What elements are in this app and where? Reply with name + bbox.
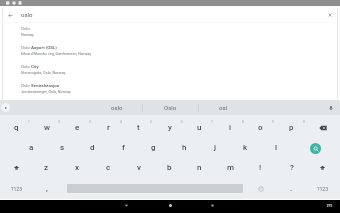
staticText: Norway — [21, 32, 34, 36]
button[interactable]: Backspace — [307, 119, 338, 136]
button[interactable]: . — [276, 180, 307, 197]
staticText: u — [197, 123, 202, 132]
staticText: Oslo Sentralstasjon — [21, 83, 60, 88]
button[interactable]: Oslo — [142, 100, 198, 115]
staticText: Edvard Munchs veg, Gardermoen, Norway — [21, 51, 92, 55]
staticText: d — [90, 143, 95, 152]
staticText: t — [137, 123, 140, 132]
button[interactable]: l — [261, 139, 292, 156]
staticText: y — [168, 123, 172, 132]
staticText: 8 — [242, 120, 244, 124]
button[interactable]: g — [138, 139, 169, 156]
button[interactable]: oslo — [89, 100, 145, 115]
staticText: j — [214, 143, 217, 152]
button[interactable]: Shift — [307, 159, 338, 176]
staticText: 4 — [120, 120, 122, 124]
staticText: . — [290, 184, 293, 193]
button[interactable]: w — [31, 119, 62, 136]
button[interactable]: Oslo — [2, 23, 337, 42]
staticText: oslo — [21, 11, 33, 18]
button[interactable]: q — [1, 119, 32, 136]
button[interactable]: a — [16, 139, 47, 156]
button[interactable]: r — [93, 119, 124, 136]
staticText: o — [258, 123, 263, 132]
staticText: 2 — [58, 120, 60, 124]
button[interactable]: k — [230, 139, 261, 156]
staticText: n — [197, 163, 202, 172]
button[interactable]: b — [154, 159, 185, 176]
staticText: 6 — [181, 120, 183, 124]
button[interactable]: , — [31, 180, 62, 197]
button[interactable]: ! — [245, 159, 276, 176]
button[interactable]: t — [123, 119, 154, 136]
staticText: Oslo — [164, 104, 177, 111]
staticText: Oslo Airport (OSL) — [21, 45, 57, 50]
button[interactable]: Home — [161, 199, 179, 212]
staticText: Oslo — [21, 26, 30, 31]
button[interactable]: c — [93, 159, 124, 176]
button[interactable]: Oslo Airport (OSL) — [2, 42, 337, 61]
button[interactable]: Back — [3, 8, 17, 22]
button[interactable]: Show more suggestions — [0, 100, 11, 115]
button[interactable]: Oslo Sentralstasjon — [2, 80, 337, 99]
button[interactable]: Shift — [1, 159, 32, 176]
staticText: q — [14, 123, 19, 132]
button[interactable]: v — [123, 159, 154, 176]
button[interactable]: j — [200, 139, 231, 156]
button[interactable]: m — [215, 159, 246, 176]
staticText: f — [122, 143, 125, 152]
button[interactable]: ? — [276, 159, 307, 176]
staticText: h — [182, 143, 187, 152]
staticText: w — [44, 123, 50, 132]
button[interactable]: ?123 — [307, 180, 338, 197]
staticText: r — [107, 123, 110, 132]
button[interactable]: n — [184, 159, 215, 176]
staticText: Jernbanetorget, Oslo, Norway — [21, 89, 71, 93]
staticText: osl — [219, 104, 228, 111]
button[interactable]: f — [108, 139, 139, 156]
staticText: ? — [290, 163, 294, 172]
staticText: x — [75, 163, 80, 172]
staticText: p — [289, 123, 294, 132]
staticText: m — [227, 163, 234, 172]
staticText: s — [60, 143, 65, 152]
button[interactable]: Back — [117, 199, 135, 212]
button[interactable]: o — [245, 119, 276, 136]
button[interactable]: x — [62, 159, 93, 176]
button[interactable]: Hide keyboard — [320, 199, 338, 212]
staticText: z — [44, 163, 49, 172]
staticText: a — [29, 143, 34, 152]
staticText: Stenersgata, Oslo, Norway — [21, 70, 66, 74]
button[interactable]: e — [62, 119, 93, 136]
staticText: 9 — [272, 120, 274, 124]
staticText: k — [243, 143, 248, 152]
staticText: c — [106, 163, 111, 172]
staticText: ?123 — [317, 186, 329, 192]
staticText: Oslo City — [21, 64, 39, 69]
button[interactable]: s — [47, 139, 78, 156]
button[interactable]: Emoji — [245, 180, 276, 197]
staticText: 3 — [89, 120, 91, 124]
staticText: 0 — [303, 120, 305, 124]
staticText: v — [137, 163, 141, 172]
button[interactable]: Oslo City — [2, 61, 337, 80]
button[interactable]: osl — [195, 100, 251, 115]
button[interactable]: y — [154, 119, 185, 136]
button[interactable]: ?123 — [1, 180, 32, 197]
button[interactable]: Recents — [203, 199, 221, 212]
staticText: oslo — [111, 104, 123, 111]
button[interactable]: h — [169, 139, 200, 156]
button[interactable]: Voice input — [324, 100, 337, 115]
button[interactable]: Search — [310, 143, 321, 154]
button[interactable]: Clear search — [323, 8, 337, 22]
staticText: , — [46, 184, 48, 193]
button[interactable]: d — [77, 139, 108, 156]
button[interactable]: z — [31, 159, 62, 176]
staticText: 7 — [211, 120, 213, 124]
button[interactable]: i — [215, 119, 246, 136]
staticText: ?123 — [11, 186, 23, 192]
staticText: ! — [259, 163, 262, 172]
button[interactable]: u — [184, 119, 215, 136]
button[interactable]: p — [276, 119, 307, 136]
